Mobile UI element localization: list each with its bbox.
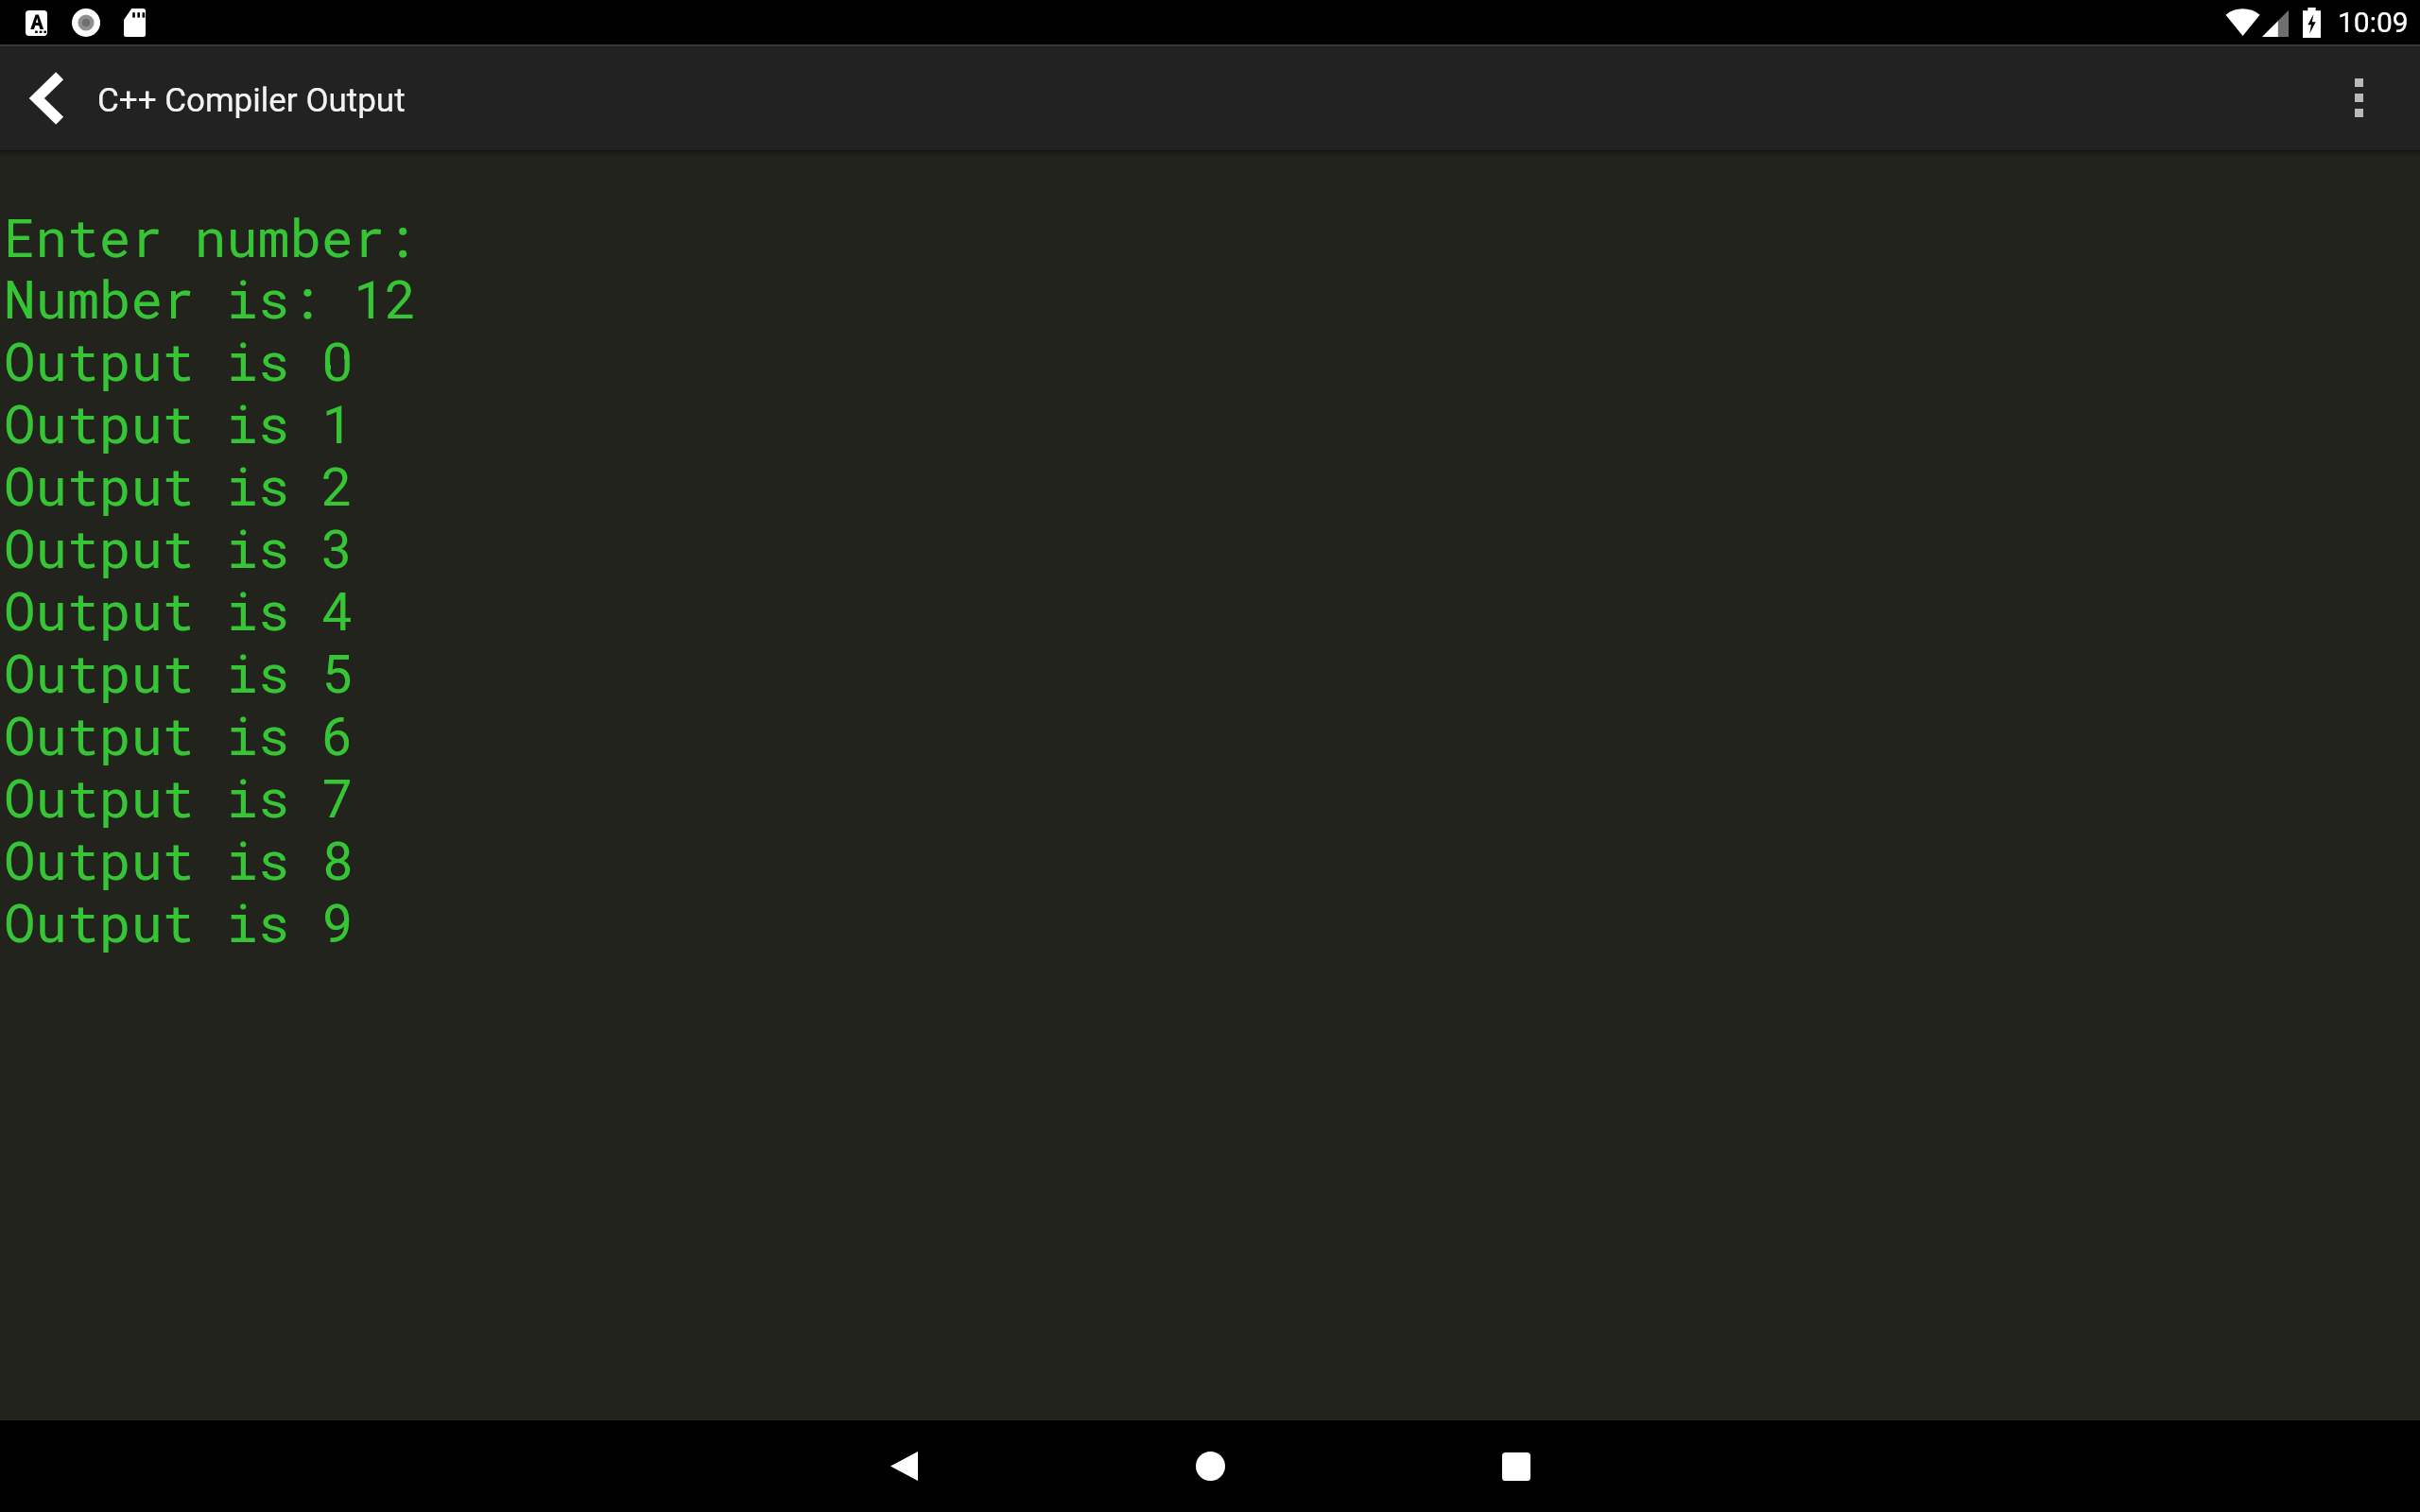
staticText: Enter number: Number is: 12 Output is 0 … [4, 201, 2420, 957]
button[interactable]: Home [1163, 1420, 1257, 1512]
staticText: 10:09 [2338, 6, 2409, 39]
button[interactable]: Navigate up [10, 60, 86, 135]
button[interactable]: Back [856, 1420, 951, 1512]
button[interactable]: More options [2321, 60, 2396, 135]
staticText: C++ Compiler Output [97, 81, 406, 120]
button[interactable]: Recent apps [1469, 1420, 1564, 1512]
